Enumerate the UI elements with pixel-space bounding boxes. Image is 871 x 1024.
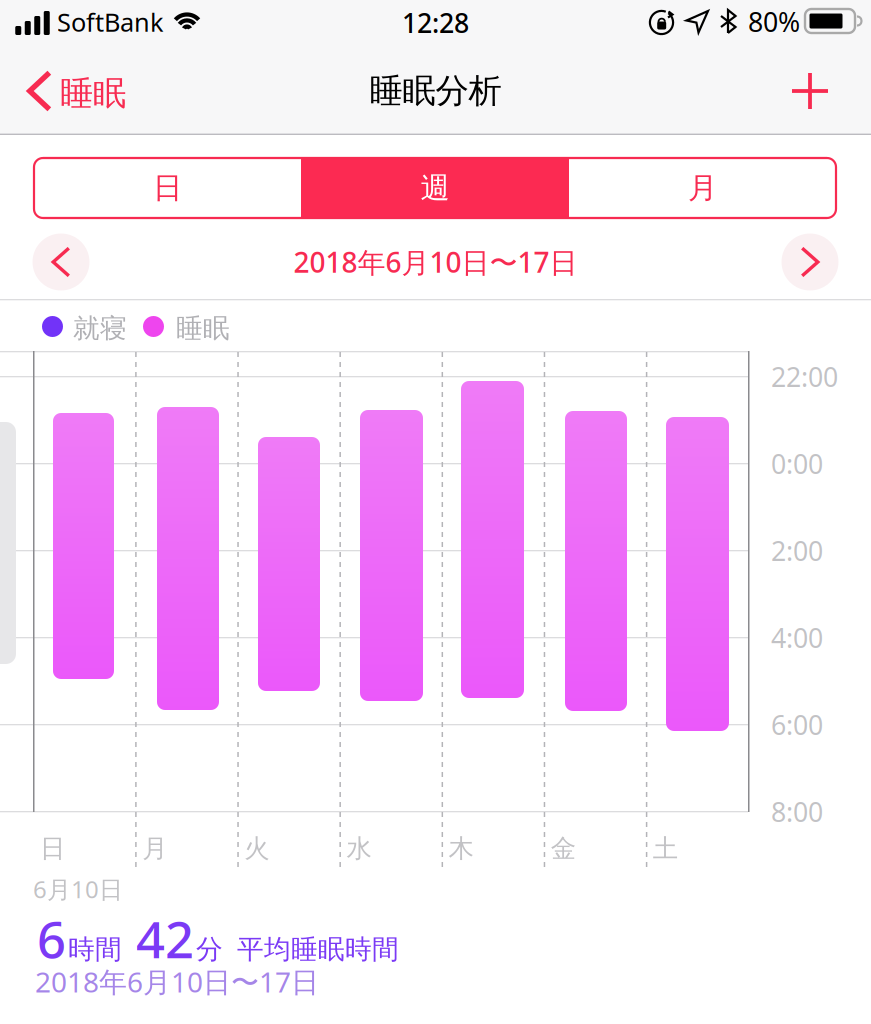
staticText: 分 <box>196 933 223 966</box>
staticText: 水 <box>346 833 371 864</box>
staticText: 0:00 <box>771 446 823 481</box>
button[interactable]: 次の週 <box>778 230 842 294</box>
staticText: 睡眠 <box>176 312 230 345</box>
staticText: 42 <box>136 905 194 972</box>
staticText: 週 <box>420 170 449 206</box>
button[interactable]: 睡眠 <box>16 54 151 128</box>
button[interactable]: 追加 <box>773 54 847 128</box>
staticText: 6:00 <box>771 707 823 742</box>
staticText: 睡眠 <box>60 73 126 114</box>
staticText: 2018年6月10日〜17日 <box>35 963 319 1000</box>
staticText: 就寝 <box>73 312 127 345</box>
staticText: 80% <box>748 4 800 39</box>
staticText: 6月10日 <box>33 873 123 905</box>
staticText: 日 <box>40 833 65 864</box>
staticText: 月 <box>688 170 717 206</box>
staticText: 22:00 <box>771 359 838 394</box>
button[interactable]: 週 <box>301 158 569 218</box>
staticText: 平均睡眠時間 <box>237 933 399 966</box>
staticText: 火 <box>244 833 269 864</box>
button[interactable]: 前の週 <box>29 230 93 294</box>
staticText: 金 <box>551 833 576 864</box>
staticText: 4:00 <box>771 620 823 655</box>
staticText: 月 <box>142 833 167 864</box>
button[interactable]: 日 <box>34 158 301 218</box>
staticText: 木 <box>449 833 474 864</box>
staticText: SoftBank <box>57 5 164 39</box>
staticText: 6 <box>37 905 66 972</box>
staticText: 土 <box>653 833 678 864</box>
staticText: 時間 <box>68 933 122 966</box>
staticText: 12:28 <box>402 5 469 40</box>
staticText: 日 <box>153 170 182 206</box>
staticText: 睡眠分析 <box>369 70 501 111</box>
staticText: 2:00 <box>771 533 823 568</box>
staticText: 2018年6月10日〜17日 <box>293 243 577 281</box>
button[interactable]: 月 <box>569 158 836 218</box>
staticText: 8:00 <box>771 794 823 829</box>
